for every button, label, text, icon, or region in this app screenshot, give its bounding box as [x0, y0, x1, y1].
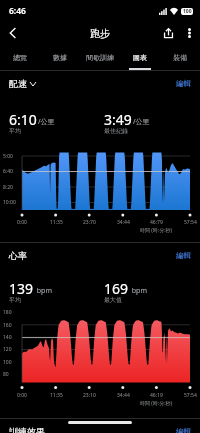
staticText: 6:10	[9, 110, 37, 129]
staticText: /公里	[133, 117, 150, 127]
staticText: 裝備	[173, 53, 187, 62]
button[interactable]: 編輯	[176, 251, 191, 260]
button[interactable]: 總覽	[0, 44, 40, 70]
staticText: 11:35	[50, 219, 63, 226]
staticText: 160	[3, 322, 12, 329]
staticText: 平均	[9, 296, 21, 304]
staticText: 120	[3, 346, 12, 353]
button[interactable]: 圖表	[120, 44, 160, 70]
staticText: 34:44	[117, 219, 130, 226]
staticText: bpm	[130, 286, 147, 296]
staticText: 圖表	[133, 53, 147, 62]
staticText: 10:00	[3, 199, 16, 206]
staticText: 6:40	[3, 168, 13, 175]
staticText: 時間 (時:分:秒)	[140, 400, 172, 407]
staticText: 平均	[9, 127, 21, 135]
staticText: 8:20	[3, 184, 13, 191]
staticText: 訓練效果	[9, 426, 45, 433]
staticText: 140	[3, 334, 12, 341]
staticText: 間歇訓練	[86, 53, 114, 62]
staticText: 跑步	[90, 27, 110, 40]
staticText: 3:49	[104, 110, 132, 129]
staticText: 0:00	[17, 392, 27, 399]
staticText: 5:00	[3, 153, 13, 160]
staticText: bpm	[35, 286, 52, 296]
staticText: 100	[183, 8, 192, 15]
staticText: 34:44	[117, 392, 130, 399]
staticText: 數據	[53, 53, 67, 62]
button[interactable]: More options	[179, 23, 199, 43]
staticText: 0:00	[17, 219, 27, 226]
staticText: 57:54	[184, 219, 197, 226]
staticText: 11:35	[50, 392, 63, 399]
staticText: 配速	[9, 78, 27, 89]
button[interactable]: Share	[157, 22, 179, 44]
staticText: /公里	[38, 117, 55, 127]
staticText: 最佳紀錄	[104, 127, 128, 135]
button[interactable]: 心率	[9, 250, 27, 261]
staticText: 心率	[9, 250, 27, 261]
staticText: 總覽	[13, 53, 27, 62]
staticText: 最大值	[104, 296, 122, 304]
staticText: 時間 (時:分:秒)	[140, 227, 172, 234]
staticText: 57:54	[184, 392, 197, 399]
staticText: 46:79	[150, 219, 163, 226]
button[interactable]: 裝備	[160, 44, 200, 70]
button[interactable]: 配速	[9, 78, 36, 89]
staticText: 23:70	[83, 219, 96, 226]
staticText: 46:19	[150, 392, 163, 399]
button[interactable]: 間歇訓練	[80, 44, 120, 70]
button[interactable]: 編輯	[176, 427, 191, 433]
staticText: 6:46	[9, 5, 26, 17]
staticText: 139	[9, 279, 34, 298]
staticText: 23:10	[83, 392, 96, 399]
staticText: 80	[3, 371, 9, 378]
button[interactable]: Back	[3, 23, 23, 43]
button[interactable]: 數據	[40, 44, 80, 70]
staticText: 180	[3, 309, 12, 316]
button[interactable]: 編輯	[176, 79, 191, 88]
staticText: 169	[104, 279, 129, 298]
button[interactable]: 訓練效果	[9, 426, 45, 433]
staticText: 100	[3, 359, 12, 366]
